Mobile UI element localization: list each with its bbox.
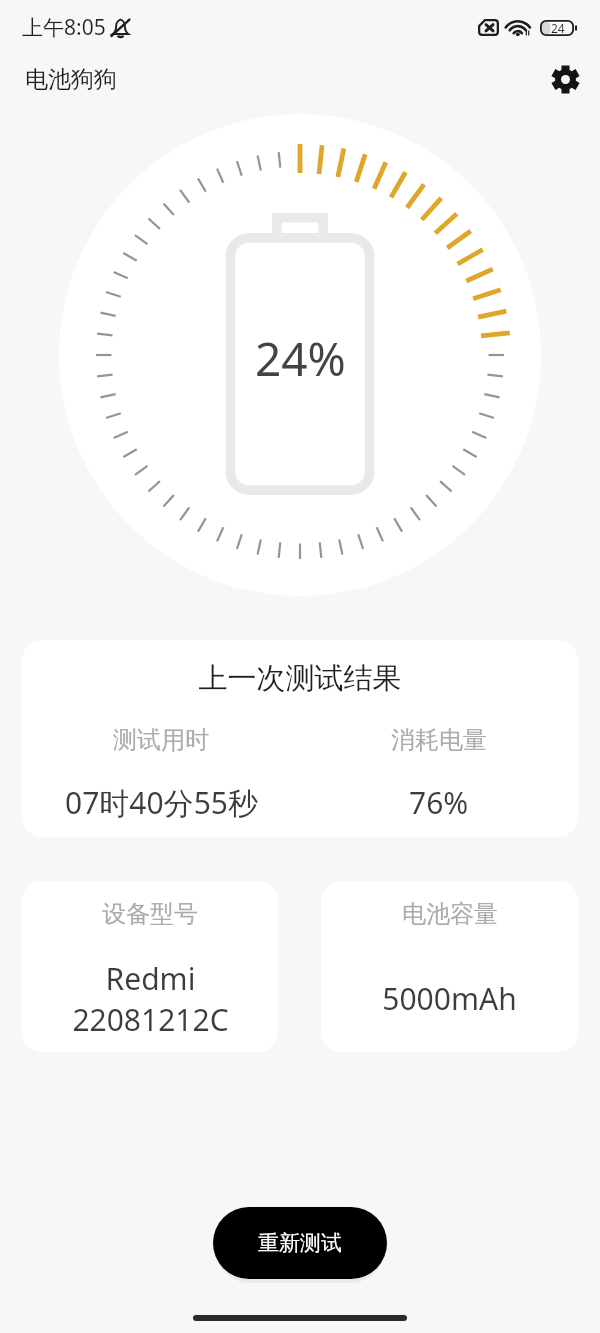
staticText: 24 xyxy=(551,20,565,36)
staticText: 76% xyxy=(409,782,469,823)
staticText: 测试用时 xyxy=(113,725,209,755)
staticText: 5000mAh xyxy=(382,978,517,1019)
staticText: 上午8:05 xyxy=(22,13,106,42)
staticText: 设备型号 xyxy=(102,899,198,929)
staticText: 上一次测试结果 xyxy=(22,660,578,697)
staticText: 电池狗狗 xyxy=(25,65,117,94)
staticText: 07时40分55秒 xyxy=(65,782,258,823)
button[interactable]: Settings xyxy=(543,57,587,101)
staticText: 重新测试 xyxy=(258,1230,342,1256)
button[interactable]: 设备型号 xyxy=(22,881,278,1052)
button[interactable]: 上一次测试结果 xyxy=(22,640,578,837)
staticText: 24% xyxy=(255,327,346,390)
button[interactable]: 电池容量 xyxy=(321,881,578,1052)
staticText: 消耗电量 xyxy=(391,725,487,755)
staticText: 电池容量 xyxy=(402,899,498,929)
button[interactable]: 重新测试 xyxy=(213,1207,387,1279)
staticText: Redmi 22081212C xyxy=(72,958,229,1040)
